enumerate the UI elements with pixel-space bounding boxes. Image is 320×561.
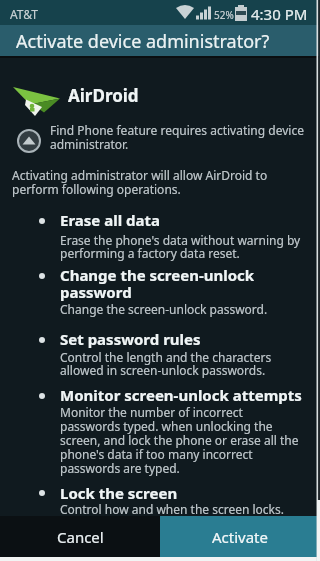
staticText: Set password rules: [60, 329, 201, 349]
staticText: Change the screen-unlock password.: [60, 301, 268, 317]
staticText: Activating administrator will allow AirD…: [12, 167, 268, 198]
staticText: AT&T: [10, 6, 38, 22]
staticText: Control the length and the characters al…: [60, 349, 272, 379]
button[interactable]: Cancel: [0, 516, 160, 557]
staticText: Erase the phone's data without warning b…: [60, 232, 301, 262]
staticText: Monitor the number of incorrect password…: [60, 404, 299, 477]
staticText: AirDroid: [68, 84, 139, 107]
staticText: Lock the screen: [60, 483, 178, 503]
staticText: 52%: [214, 8, 234, 22]
staticText: 4:30 PM: [251, 4, 308, 24]
staticText: Cancel: [57, 527, 104, 547]
staticText: Control how and when the screen locks.: [60, 501, 284, 517]
staticText: Activate: [212, 527, 268, 547]
staticText: Erase all data: [60, 210, 160, 230]
staticText: Change the screen-unlock password: [60, 265, 255, 303]
staticText: Monitor screen-unlock attempts: [60, 385, 302, 405]
button[interactable]: Activate: [160, 516, 320, 557]
staticText: Find Phone feature requires activating d…: [50, 122, 304, 153]
staticText: Activate device administrator?: [16, 29, 270, 54]
